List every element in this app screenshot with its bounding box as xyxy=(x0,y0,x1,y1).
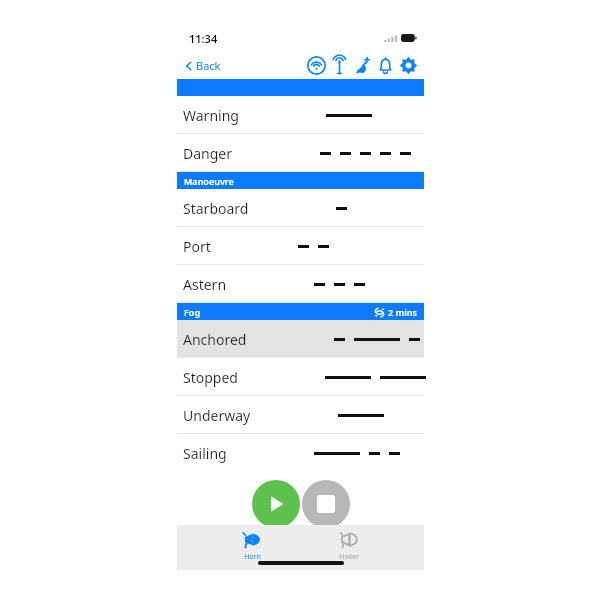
staticText: Stopped xyxy=(183,368,238,387)
button[interactable]: Starboard xyxy=(177,189,424,227)
button[interactable]: Underway xyxy=(177,396,424,434)
staticText: 2 mins xyxy=(388,306,417,318)
button[interactable]: Sailing xyxy=(177,434,424,472)
button[interactable]: Astern xyxy=(177,265,424,303)
button[interactable]: Stop xyxy=(302,480,350,528)
staticText: Starboard xyxy=(183,199,249,218)
button[interactable]: Satellite xyxy=(353,56,372,75)
button[interactable]: Radio xyxy=(330,56,349,75)
staticText: Warning xyxy=(183,106,239,125)
staticText: Hailer xyxy=(339,552,359,562)
staticText: Sailing xyxy=(183,444,227,463)
button[interactable]: Play xyxy=(252,480,300,528)
button[interactable]: Wi-Fi xyxy=(307,56,326,75)
button[interactable]: Hailer xyxy=(328,529,370,562)
button[interactable]: Port xyxy=(177,227,424,265)
button[interactable]: Horn xyxy=(231,529,273,562)
staticText: Port xyxy=(183,237,211,256)
staticText: Manoeuvre xyxy=(184,175,234,187)
button[interactable]: Settings xyxy=(399,56,418,75)
staticText: Underway xyxy=(183,406,251,425)
staticText: Danger xyxy=(183,144,233,163)
staticText: Astern xyxy=(183,275,227,294)
staticText: Back xyxy=(196,58,221,73)
button[interactable]: Alerts xyxy=(376,56,395,75)
button[interactable]: Stopped xyxy=(177,358,424,396)
staticText: Anchored xyxy=(183,330,247,349)
staticText: Horn xyxy=(244,552,261,562)
staticText: Fog xyxy=(184,306,201,318)
button[interactable]: Danger xyxy=(177,134,424,172)
button[interactable]: Back xyxy=(184,58,221,73)
staticText: 11:34 xyxy=(189,31,218,46)
button[interactable]: Anchored xyxy=(177,320,424,358)
button[interactable]: Warning xyxy=(177,96,424,134)
